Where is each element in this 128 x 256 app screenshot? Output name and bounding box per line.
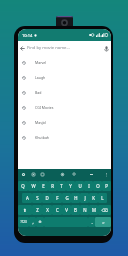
staticText: Find by movie name... <box>27 45 70 51</box>
staticText: H <box>74 195 78 201</box>
button[interactable]: P <box>102 181 111 191</box>
button[interactable]: More options <box>103 169 110 180</box>
staticText: ⬆ <box>23 208 27 213</box>
button[interactable]: W <box>28 181 38 191</box>
button[interactable]: S <box>32 193 42 203</box>
button[interactable]: B <box>71 205 80 215</box>
button[interactable]: O <box>93 181 102 191</box>
button[interactable]: Shift <box>18 205 32 215</box>
button[interactable]: A <box>22 193 32 203</box>
staticText: X <box>46 207 49 213</box>
button[interactable]: Search <box>20 169 27 180</box>
button[interactable]: H <box>71 193 80 203</box>
button[interactable]: Q <box>18 181 28 191</box>
button[interactable]: Language <box>36 217 44 227</box>
staticText: U <box>78 183 82 189</box>
button[interactable]: Voice search <box>102 41 111 55</box>
button[interactable]: Backspace <box>98 205 111 215</box>
button[interactable]: T <box>57 181 66 191</box>
button[interactable]: Marvel <box>18 55 111 70</box>
button[interactable]: Bad <box>18 85 111 100</box>
staticText: 10:14 <box>22 33 33 38</box>
staticText: Z <box>36 207 39 213</box>
staticText: A <box>26 195 29 201</box>
staticText: C <box>56 207 59 213</box>
staticText: N <box>83 207 87 213</box>
staticText: . <box>91 219 93 225</box>
button[interactable]: Y <box>66 181 75 191</box>
staticText: , <box>32 219 34 225</box>
button[interactable]: I <box>84 181 93 191</box>
staticText: L <box>101 195 104 201</box>
button[interactable]: F <box>52 193 62 203</box>
button[interactable]: Khutbah <box>18 130 111 145</box>
staticText: G <box>65 195 69 201</box>
staticText: P <box>105 183 108 189</box>
button[interactable]: G <box>62 193 71 203</box>
staticText: ?123 <box>20 220 27 224</box>
button[interactable]: Laugh <box>18 70 111 85</box>
staticText: Khutbah <box>35 135 50 140</box>
button[interactable]: Settings <box>59 169 66 180</box>
button[interactable]: Z <box>32 205 42 215</box>
staticText: S <box>36 195 39 201</box>
staticText: V <box>65 207 68 213</box>
button[interactable]: Search <box>95 217 111 227</box>
staticText: Laugh <box>35 75 46 80</box>
staticText: M <box>92 207 96 213</box>
staticText: T <box>60 183 63 189</box>
staticText: Marvel <box>35 60 47 65</box>
staticText: O <box>96 183 100 189</box>
staticText: Bad <box>35 90 42 95</box>
button[interactable]: V <box>62 205 71 215</box>
staticText: R <box>51 183 54 189</box>
button[interactable]: , <box>29 217 36 227</box>
button[interactable]: Stickers <box>30 169 37 180</box>
button[interactable]: M <box>89 205 98 215</box>
staticText: K <box>92 195 95 201</box>
staticText: Q <box>21 183 25 189</box>
button[interactable]: K <box>89 193 98 203</box>
button[interactable]: Translate <box>71 169 78 180</box>
button[interactable]: E <box>38 181 48 191</box>
staticText: J <box>84 195 86 201</box>
staticText: Y <box>69 183 72 189</box>
button[interactable]: CGI Movies <box>18 100 111 115</box>
staticText: W <box>31 183 36 189</box>
button[interactable]: X <box>42 205 52 215</box>
button[interactable]: C <box>52 205 62 215</box>
button[interactable]: D <box>42 193 52 203</box>
staticText: E <box>42 183 45 189</box>
button[interactable]: U <box>75 181 84 191</box>
staticText: B <box>74 207 77 213</box>
button[interactable]: Back <box>18 41 27 55</box>
button[interactable]: . <box>88 217 95 227</box>
staticText: Masjid <box>35 120 46 125</box>
button[interactable]: L <box>98 193 107 203</box>
staticText: ⌫ <box>101 208 108 213</box>
button[interactable]: N <box>80 205 89 215</box>
staticText: D <box>45 195 49 201</box>
staticText: F <box>56 195 59 201</box>
button[interactable]: J <box>80 193 89 203</box>
button[interactable]: Masjid <box>18 115 111 130</box>
button[interactable]: R <box>48 181 57 191</box>
staticText: CGI Movies <box>35 105 54 110</box>
staticText: ⌕ <box>102 220 105 224</box>
staticText: I <box>88 183 90 189</box>
button[interactable]: ?123 <box>18 217 29 227</box>
button[interactable]: GIF <box>39 169 46 180</box>
button[interactable]: Clipboard <box>88 169 95 180</box>
staticText: ⊕ <box>38 220 42 224</box>
